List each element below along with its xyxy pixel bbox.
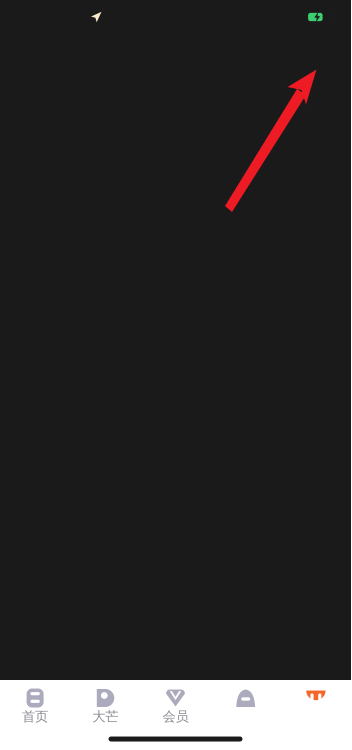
button[interactable]: Settings: [305, 34, 351, 67]
button[interactable]: 首页: [0, 682, 70, 726]
staticText: 大芒: [92, 708, 118, 725]
button[interactable]: [281, 682, 351, 726]
staticText: 会员: [162, 708, 188, 725]
button[interactable]: [211, 682, 281, 726]
button[interactable]: 大芒: [70, 682, 140, 726]
staticText: 首页: [22, 708, 48, 725]
button[interactable]: 会员: [140, 682, 211, 726]
